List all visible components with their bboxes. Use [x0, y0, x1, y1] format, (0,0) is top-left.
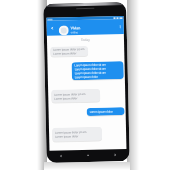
- staticText: Lorem ipsum dolor sit am: [75, 66, 107, 71]
- staticText: Lorem ipsum dolor sit am: [53, 47, 85, 52]
- staticText: Lorem ipsum dolor: [75, 75, 99, 79]
- staticText: Lorem ipsum dolor sit am: [54, 92, 86, 97]
- button[interactable]: Back: [58, 153, 64, 159]
- staticText: Lorem ipsum dolor: [54, 96, 78, 101]
- button[interactable]: Home: [85, 153, 91, 158]
- button[interactable]: More options: [118, 24, 123, 29]
- staticText: online: [71, 30, 78, 33]
- staticText: Lorem ipsum dolor: [53, 51, 77, 56]
- staticText: Lorem ipsum dolor: [90, 109, 114, 114]
- button[interactable]: Recents: [112, 152, 118, 157]
- button[interactable]: Lorem ipsum dolor sit am: [52, 127, 102, 142]
- button[interactable]: Back: [50, 26, 55, 31]
- staticText: Lorem ipsum dolor sit am: [55, 130, 87, 135]
- button[interactable]: Lorem ipsum dolor sit am: [71, 61, 124, 80]
- staticText: Vivian: [71, 25, 81, 30]
- button[interactable]: Lorem ipsum dolor sit am: [50, 46, 88, 57]
- staticText: Today: [81, 38, 90, 42]
- staticText: Lorem ipsum dolor: [55, 134, 79, 139]
- staticText: Lorem ipsum dolor sit am: [75, 70, 107, 75]
- staticText: Lorem ipsum dolor sit am: [74, 62, 107, 67]
- button[interactable]: Lorem ipsum dolor: [86, 107, 125, 116]
- button[interactable]: Lorem ipsum dolor sit am: [51, 89, 100, 103]
